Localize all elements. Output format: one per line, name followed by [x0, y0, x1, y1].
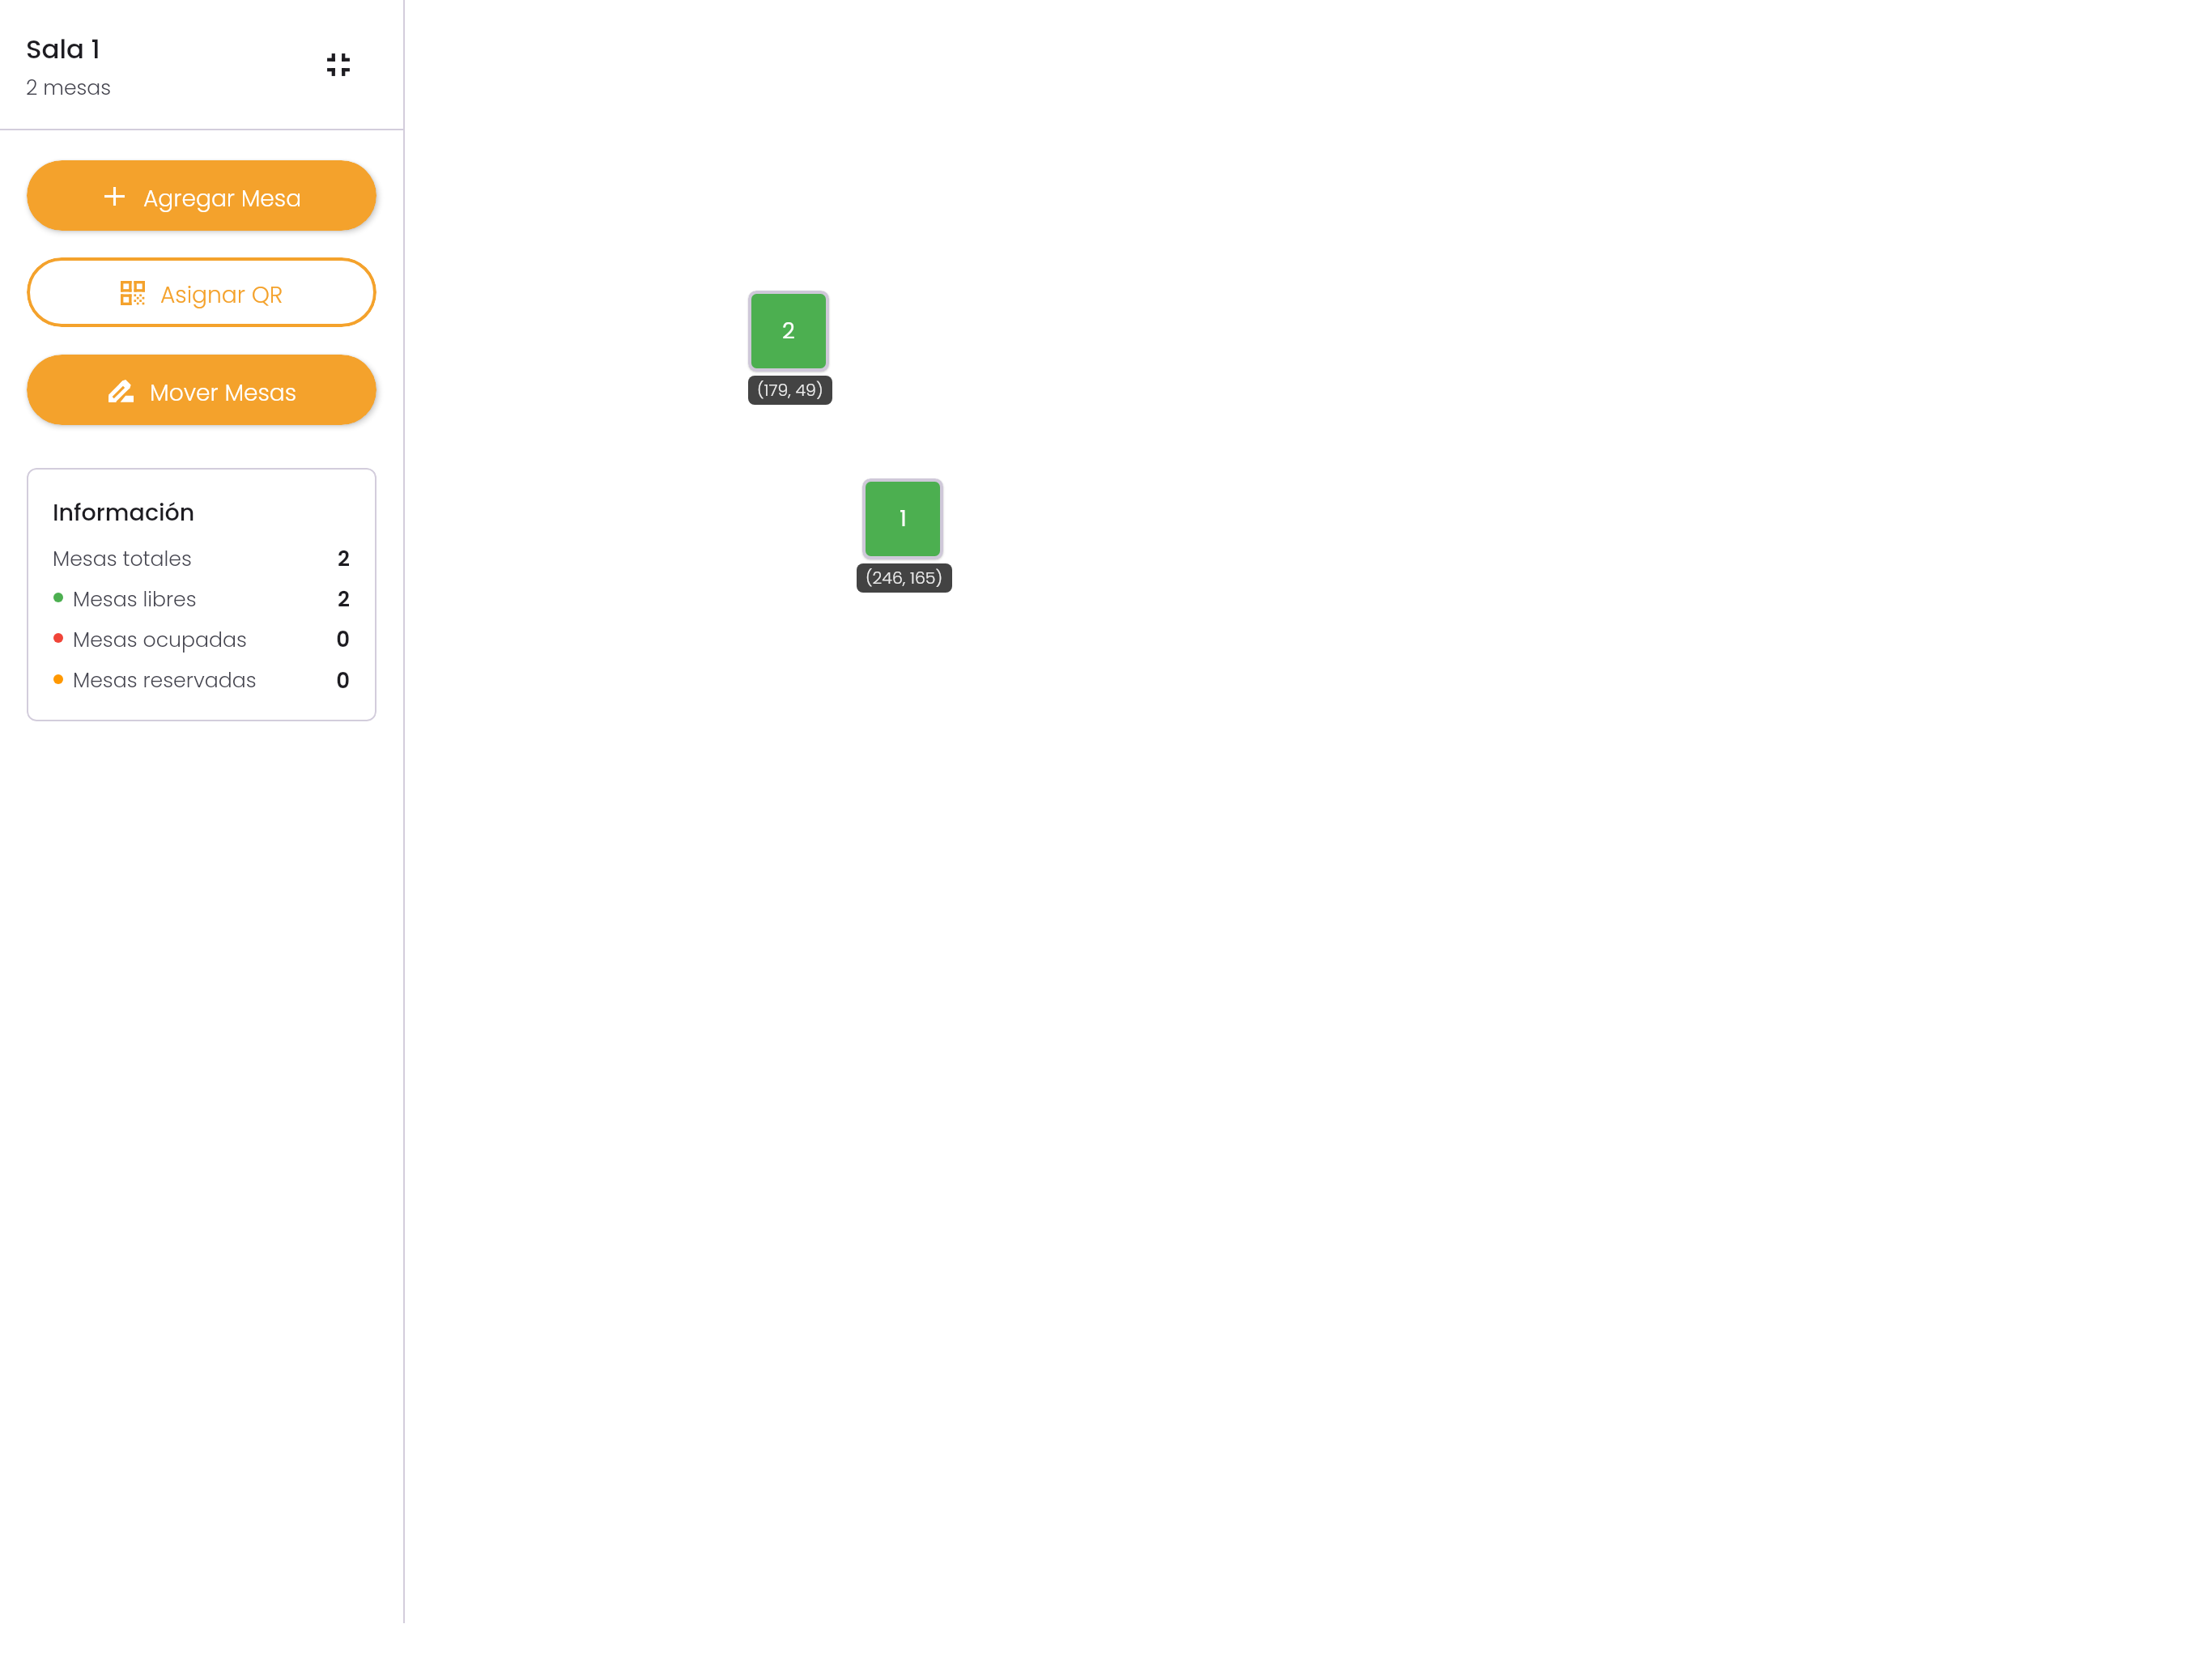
- staticText: 2: [782, 315, 795, 346]
- button[interactable]: Salir de pantalla completa: [313, 39, 364, 91]
- staticText: 0: [27, 625, 350, 654]
- staticText: Mover Mesas: [150, 376, 297, 408]
- staticText: Agregar Mesa: [143, 182, 302, 214]
- button[interactable]: 1: [866, 482, 940, 556]
- staticText: 0: [27, 666, 350, 695]
- staticText: Mesas ocupadas: [73, 626, 247, 654]
- staticText: Información: [53, 496, 195, 529]
- staticText: Mesas totales: [53, 545, 192, 573]
- staticText: Mesas reservadas: [73, 666, 257, 695]
- staticText: 1: [900, 503, 907, 534]
- button[interactable]: Mover Mesas: [27, 355, 376, 425]
- button[interactable]: 2: [751, 294, 826, 368]
- staticText: (179, 49): [757, 378, 823, 402]
- button[interactable]: Agregar Mesa: [27, 160, 376, 231]
- staticText: (246, 165): [866, 566, 943, 589]
- staticText: 2: [27, 544, 350, 573]
- staticText: 2 mesas: [26, 74, 112, 102]
- staticText: Sala 1: [26, 31, 100, 67]
- staticText: Asignar QR: [160, 278, 283, 310]
- button[interactable]: Asignar QR: [27, 257, 376, 327]
- staticText: Mesas libres: [73, 585, 197, 614]
- staticText: 2: [27, 585, 350, 614]
